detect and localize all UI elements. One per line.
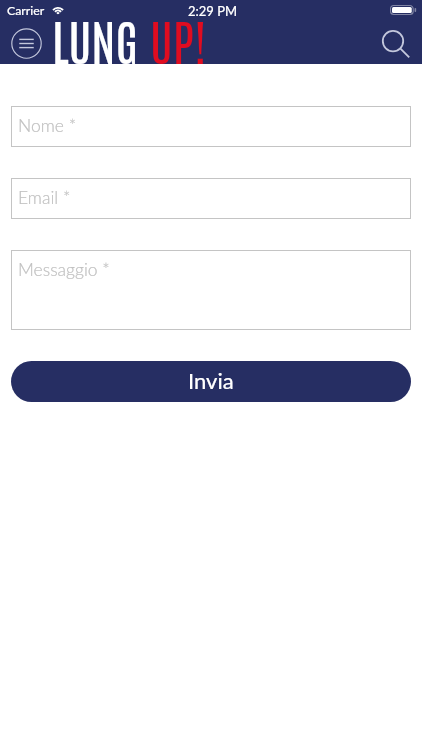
staticText: 2:29 PM <box>188 3 238 19</box>
button[interactable]: Search <box>378 27 414 63</box>
staticText: Invia <box>188 367 234 393</box>
staticText: UP! <box>150 8 207 64</box>
staticText: Carrier <box>7 3 45 18</box>
staticText: LUNG <box>52 8 150 64</box>
staticText: Email * <box>18 187 71 208</box>
button[interactable]: Messaggio * <box>11 250 411 330</box>
button[interactable]: Email * <box>11 178 411 219</box>
staticText: Messaggio * <box>18 259 110 280</box>
staticText: Nome * <box>18 115 77 136</box>
button[interactable]: Menu <box>8 25 45 62</box>
button[interactable]: Nome * <box>11 106 411 147</box>
button[interactable]: Invia <box>11 361 411 402</box>
